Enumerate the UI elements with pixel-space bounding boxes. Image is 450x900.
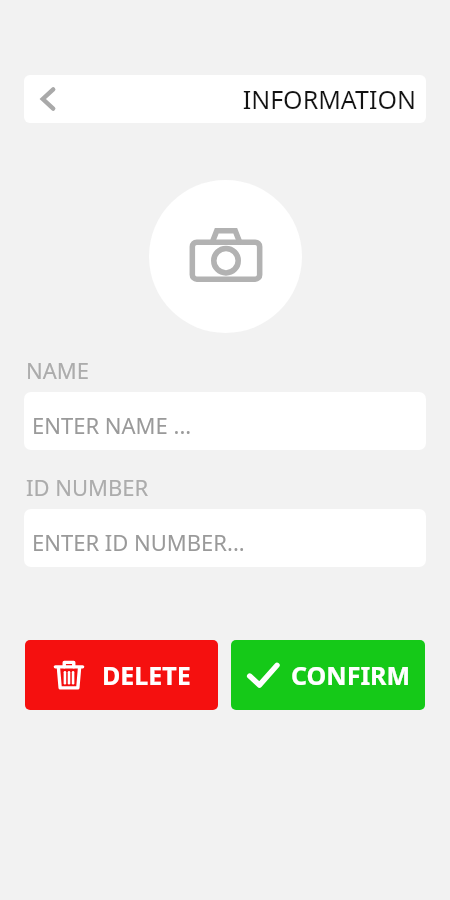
button[interactable]: ENTER NAME ... bbox=[24, 392, 426, 450]
staticText: NAME bbox=[26, 355, 89, 385]
staticText: ENTER ID NUMBER... bbox=[32, 527, 245, 557]
button[interactable]: Back bbox=[24, 75, 426, 123]
button[interactable]: DELETE bbox=[25, 640, 218, 710]
staticText: CONFIRM bbox=[291, 658, 411, 692]
button[interactable]: CONFIRM bbox=[231, 640, 425, 710]
staticText: INFORMATION bbox=[242, 82, 416, 116]
staticText: ID NUMBER bbox=[26, 472, 149, 502]
button[interactable]: Take photo bbox=[149, 180, 302, 333]
staticText: DELETE bbox=[102, 658, 191, 692]
staticText: ENTER NAME ... bbox=[32, 410, 192, 440]
button[interactable]: Back bbox=[24, 75, 72, 123]
button[interactable]: ENTER ID NUMBER... bbox=[24, 509, 426, 567]
